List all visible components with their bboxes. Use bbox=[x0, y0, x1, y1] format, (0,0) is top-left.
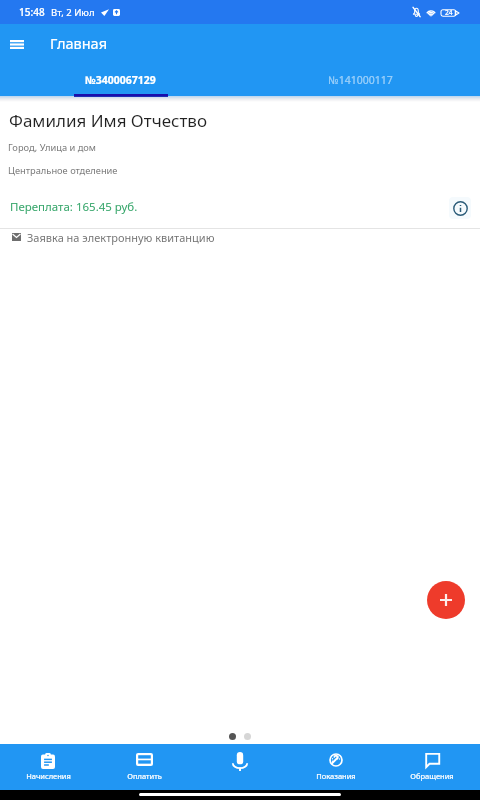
button[interactable]: Voice search bbox=[192, 744, 288, 790]
staticText: Оплатить bbox=[127, 771, 162, 781]
staticText: Главная bbox=[50, 33, 108, 53]
staticText: Фамилия Имя Отчество bbox=[9, 109, 208, 132]
staticText: Показания bbox=[316, 771, 356, 781]
staticText: Город, Улица и дом bbox=[8, 141, 96, 154]
button[interactable]: Обращения bbox=[384, 744, 480, 790]
staticText: Обращения bbox=[410, 771, 454, 781]
staticText: Начисления bbox=[26, 771, 71, 781]
button[interactable]: Оплатить bbox=[96, 744, 192, 790]
staticText: №3400067129 bbox=[85, 73, 156, 87]
staticText: №141000117 bbox=[328, 73, 393, 87]
button[interactable]: №3400067129 bbox=[0, 64, 240, 96]
staticText: 15:48 bbox=[19, 5, 45, 19]
button[interactable]: Заявка на электронную квитанцию bbox=[0, 227, 480, 247]
button[interactable]: Add bbox=[427, 581, 465, 619]
button[interactable]: Menu bbox=[2, 29, 32, 59]
button[interactable]: Info bbox=[449, 197, 471, 219]
button[interactable]: №141000117 bbox=[240, 64, 480, 96]
staticText: Вт, 2 Июл bbox=[51, 6, 95, 19]
staticText: Центральное отделение bbox=[8, 164, 118, 177]
staticText: 24 bbox=[445, 8, 453, 17]
button[interactable]: Показания bbox=[288, 744, 384, 790]
staticText: Переплата: 165.45 руб. bbox=[10, 199, 138, 215]
button[interactable]: Начисления bbox=[0, 744, 96, 790]
staticText: Заявка на электронную квитанцию bbox=[27, 230, 215, 245]
